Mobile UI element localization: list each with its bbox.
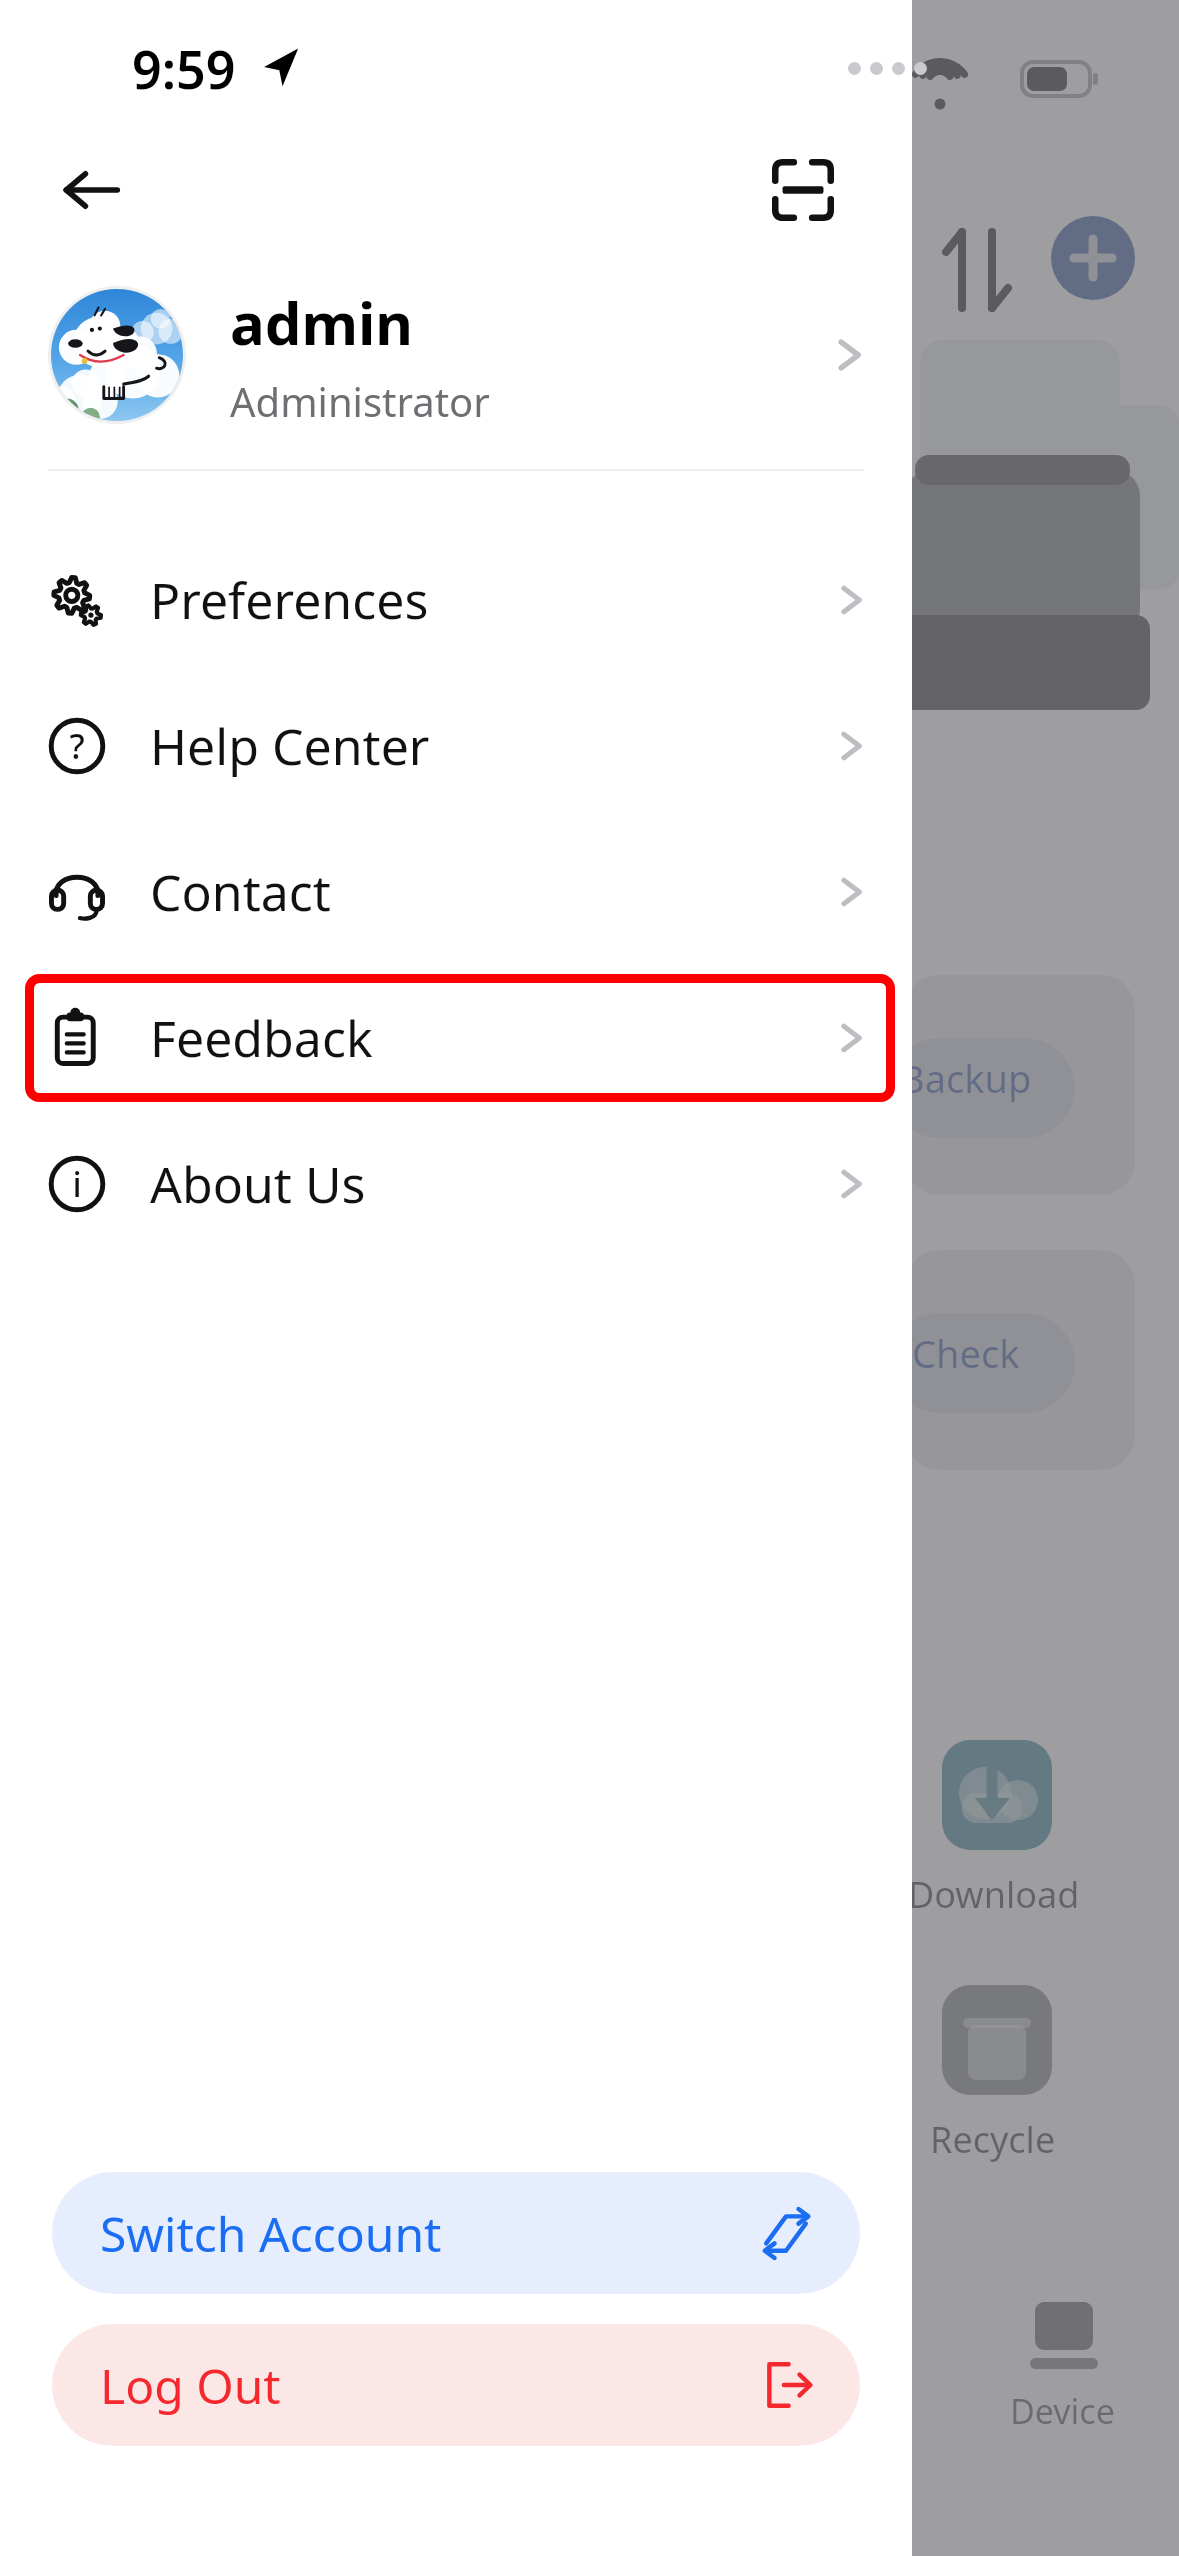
- button[interactable]: Contact: [0, 819, 912, 965]
- button[interactable]: Log Out: [52, 2324, 860, 2446]
- button[interactable]: ?: [0, 673, 912, 819]
- staticText: ?: [69, 723, 85, 769]
- staticText: Administrator: [230, 374, 490, 428]
- button[interactable]: Scan: [750, 137, 856, 243]
- staticText: Backup: [900, 1052, 1032, 1104]
- staticText: Feedback: [150, 1004, 830, 1072]
- staticText: Contact: [150, 858, 830, 926]
- button[interactable]: Back: [38, 137, 144, 243]
- staticText: Preferences: [150, 566, 830, 634]
- button[interactable]: Feedback: [0, 965, 912, 1111]
- staticText: Check: [912, 1327, 1020, 1379]
- staticText: admin: [230, 283, 413, 362]
- button[interactable]: admin: [0, 255, 912, 455]
- staticText: Download: [908, 1870, 1080, 1919]
- button[interactable]: i: [0, 1111, 912, 1257]
- staticText: Switch Account: [100, 2201, 760, 2266]
- staticText: Help Center: [150, 712, 830, 780]
- staticText: Log Out: [100, 2353, 760, 2418]
- staticText: Recycle: [930, 2115, 1056, 2164]
- staticText: About Us: [150, 1150, 830, 1218]
- button[interactable]: Preferences: [0, 527, 912, 673]
- button[interactable]: Switch Account: [52, 2172, 860, 2294]
- staticText: Device: [1010, 2388, 1115, 2434]
- staticText: 9:59: [132, 33, 236, 104]
- staticText: i: [72, 1161, 82, 1207]
